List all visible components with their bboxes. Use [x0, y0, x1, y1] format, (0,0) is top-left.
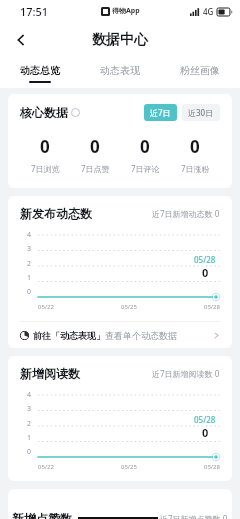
staticText: 查看单个动态数据 [105, 330, 177, 341]
staticText: 05/28 [204, 463, 220, 471]
staticText: 新发布动态数 [20, 206, 92, 221]
staticText: 7日点赞 [81, 163, 110, 174]
staticText: 近7日新增点赞数 0 [160, 513, 228, 519]
staticText: 动态总览 [20, 64, 60, 77]
staticText: 近7日新增阅读数 0 [152, 368, 220, 379]
button[interactable]: 动态总览 [0, 58, 80, 88]
staticText: 核心数据 [20, 105, 68, 120]
button[interactable]: Back [6, 25, 36, 55]
staticText: 0 [202, 425, 209, 440]
staticText: 4 [27, 390, 32, 400]
staticText: 近7日 [150, 107, 171, 118]
staticText: 3 [27, 244, 32, 254]
staticText: 0 [140, 135, 150, 158]
staticText: 3 [27, 404, 32, 414]
staticText: 05/28 [194, 254, 216, 265]
button[interactable]: 近7日 [144, 104, 177, 121]
staticText: 新增阅读数 [20, 366, 80, 381]
staticText: 7日涨粉 [181, 163, 210, 174]
staticText: 05/22 [38, 303, 54, 311]
staticText: 动态表现 [100, 64, 140, 77]
staticText: 0 [90, 135, 100, 158]
staticText: 新增点赞数 [12, 511, 72, 519]
staticText: 近30日 [188, 107, 214, 118]
staticText: 粉丝画像 [180, 64, 220, 77]
staticText: 0 [40, 135, 50, 158]
staticText: 0 [27, 447, 32, 457]
staticText: 05/28 [194, 414, 216, 425]
staticText: 近7日新增动态数 0 [152, 208, 220, 219]
button[interactable]: 粉丝画像 [160, 58, 240, 88]
staticText: 05/25 [121, 303, 137, 311]
staticText: 1 [27, 273, 32, 283]
staticText: 17:51 [20, 4, 49, 19]
button[interactable]: 前往「动态表现」 [8, 322, 232, 348]
staticText: 4 [27, 230, 32, 240]
staticText: 05/28 [204, 303, 220, 311]
staticText: 0 [27, 287, 32, 297]
staticText: 0 [190, 135, 200, 158]
staticText: 2 [27, 259, 32, 269]
staticText: 7日浏览 [31, 163, 60, 174]
staticText: 1 [27, 433, 32, 443]
staticText: 7日评论 [131, 163, 160, 174]
staticText: 数据中心 [92, 31, 148, 49]
staticText: 得物App [112, 6, 140, 16]
staticText: 05/22 [38, 463, 54, 471]
button[interactable]: 近30日 [182, 104, 220, 121]
button[interactable]: 动态表现 [80, 58, 160, 88]
staticText: 前往「动态表现」 [33, 330, 105, 341]
staticText: 2 [27, 419, 32, 429]
staticText: 05/25 [121, 463, 137, 471]
staticText: 0 [202, 265, 209, 280]
staticText: 4G [203, 6, 214, 17]
